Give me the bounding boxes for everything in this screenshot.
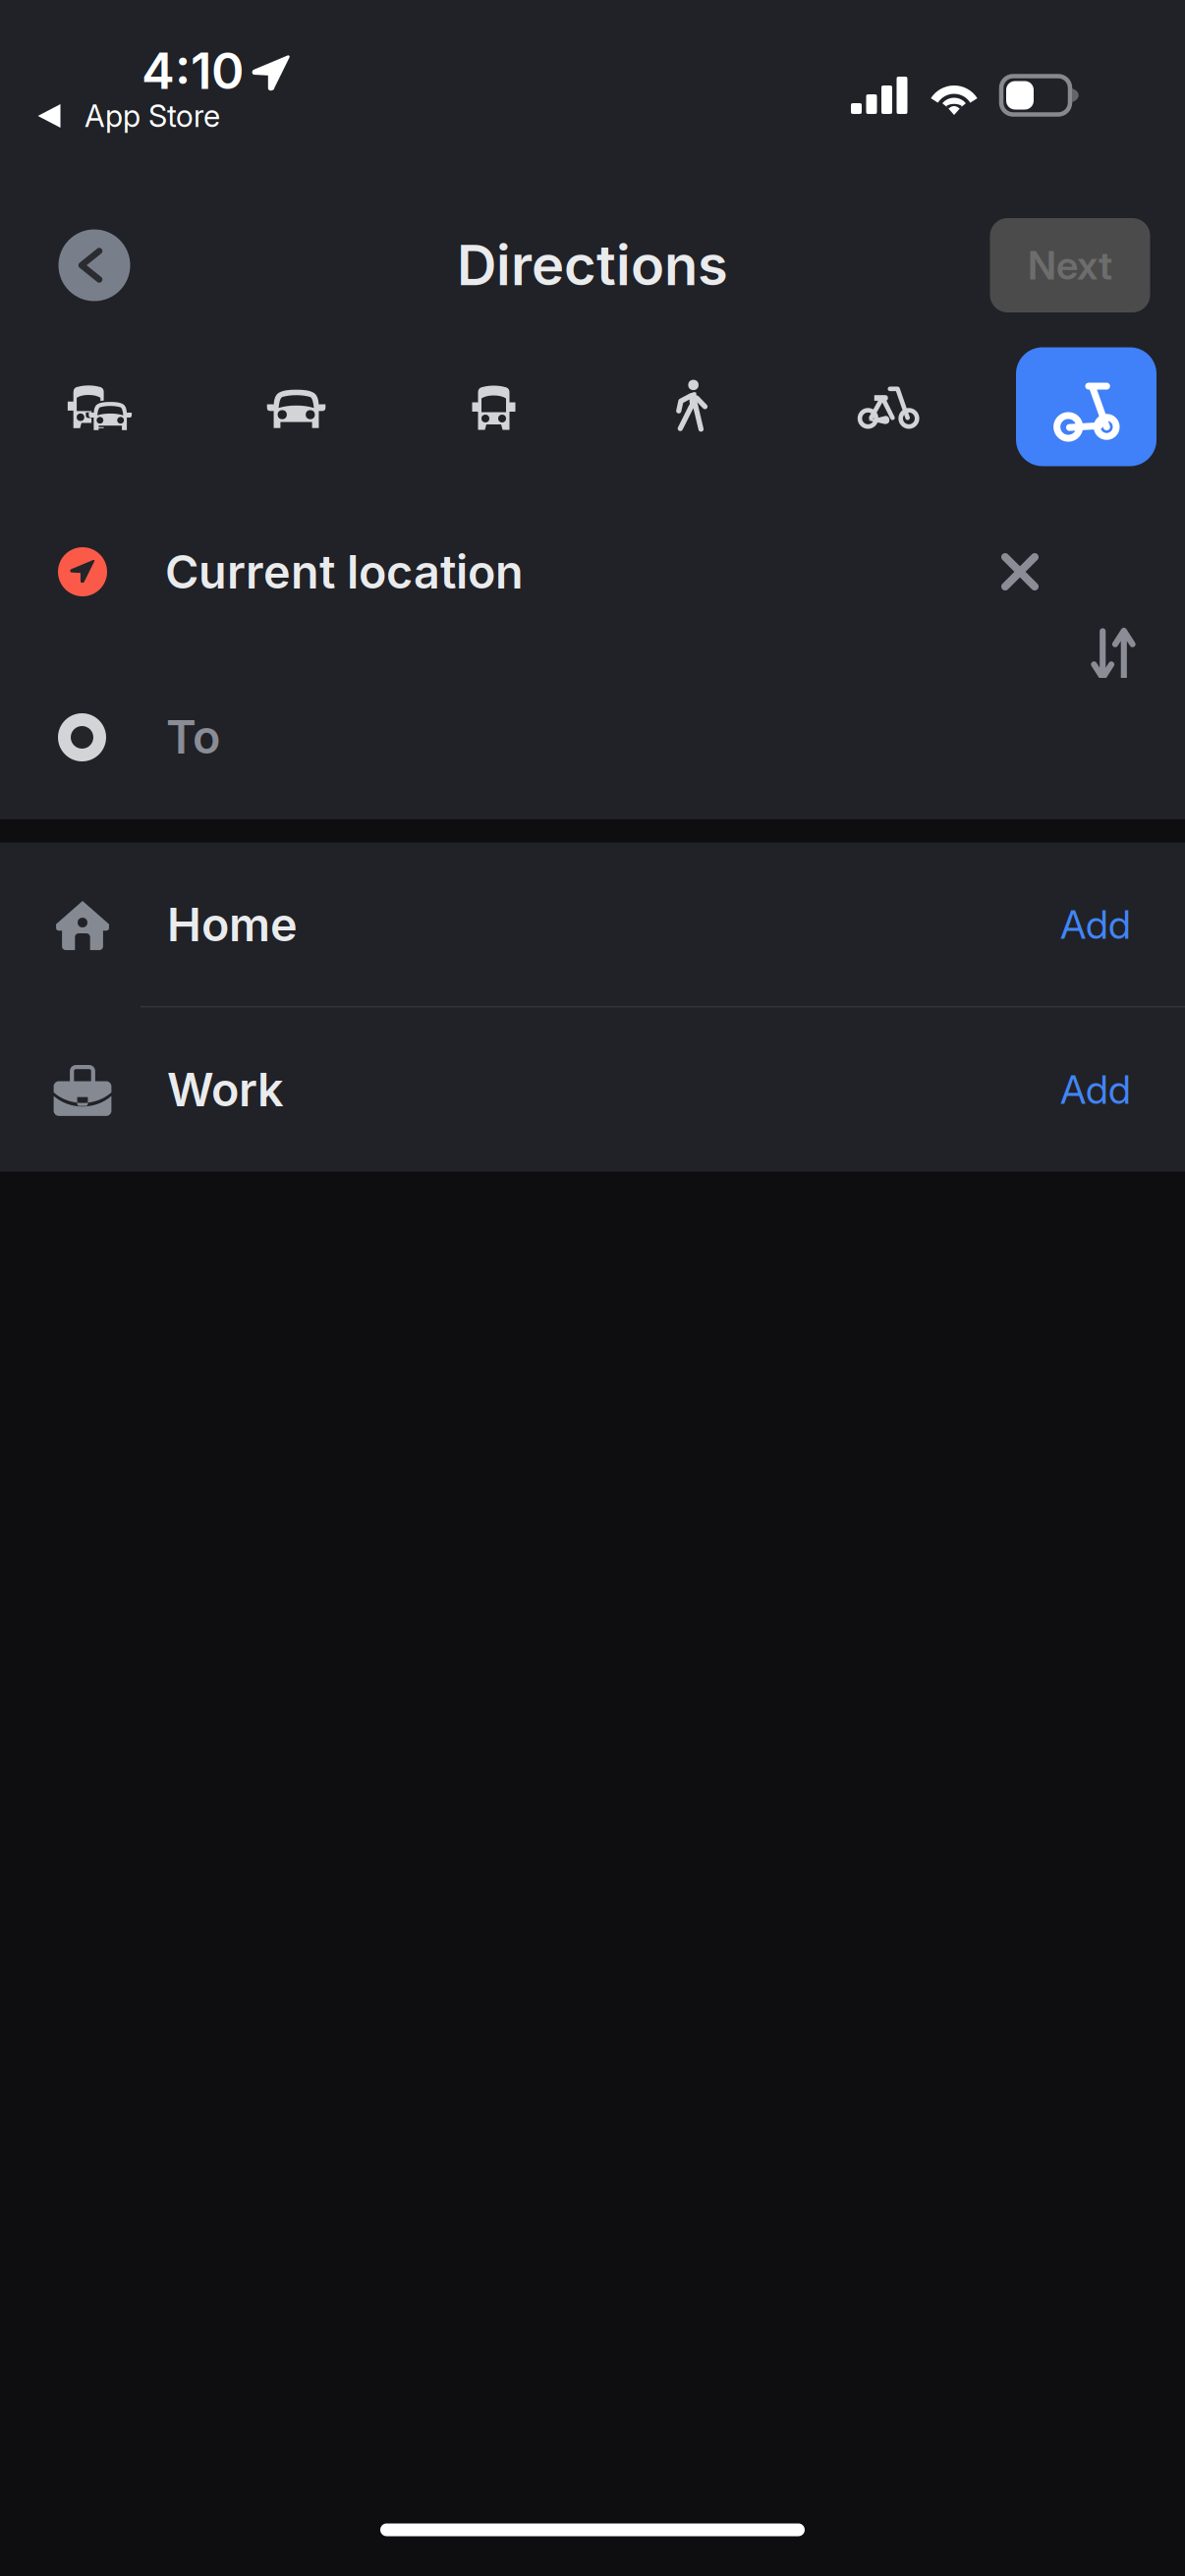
staticText: Directions bbox=[457, 232, 728, 299]
button[interactable]: Mixed transport bbox=[0, 347, 197, 466]
staticText: Current location bbox=[165, 544, 524, 600]
button[interactable]: Home bbox=[0, 842, 1185, 1007]
button[interactable]: Current location bbox=[0, 513, 1185, 631]
staticText: Add bbox=[1060, 1066, 1131, 1113]
button[interactable]: Transit bbox=[395, 347, 592, 466]
button[interactable]: Back bbox=[58, 229, 130, 301]
button[interactable]: Scooter bbox=[987, 347, 1185, 466]
staticText: Add bbox=[1060, 901, 1131, 948]
staticText: App Store bbox=[85, 98, 220, 134]
staticText: Home bbox=[167, 897, 298, 952]
staticText: 4:10 bbox=[141, 41, 244, 101]
button[interactable]: Swap start and destination bbox=[1064, 605, 1162, 703]
button[interactable]: To bbox=[0, 678, 1185, 796]
button[interactable]: Work bbox=[0, 1008, 1185, 1172]
staticText: To bbox=[166, 709, 220, 765]
button[interactable]: Walk bbox=[592, 347, 790, 466]
button[interactable]: Clear bbox=[973, 525, 1067, 619]
button[interactable]: Next bbox=[990, 218, 1150, 312]
button[interactable]: Cycle bbox=[790, 347, 987, 466]
staticText: Work bbox=[167, 1062, 284, 1117]
staticText: Next bbox=[1028, 241, 1112, 289]
button[interactable]: Drive bbox=[197, 347, 395, 466]
